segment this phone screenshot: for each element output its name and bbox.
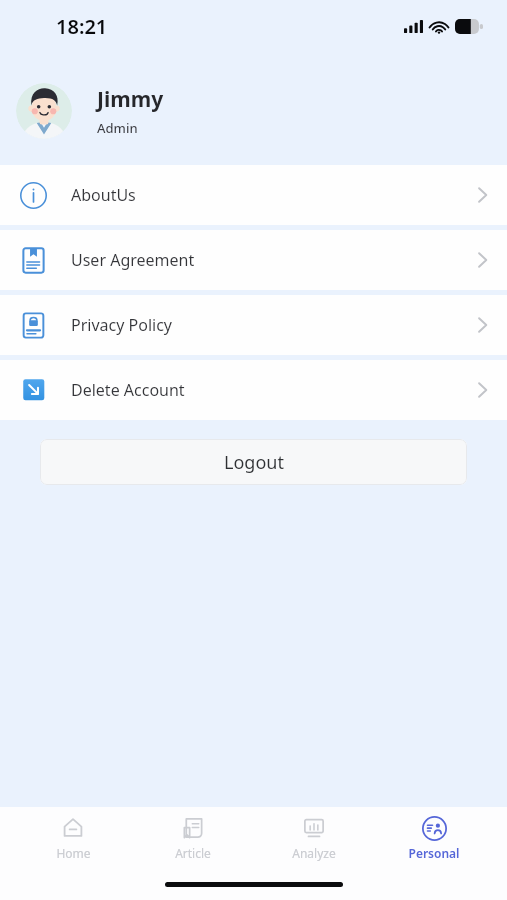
staticText: User Agreement [71,249,195,271]
button[interactable]: Privacy Policy [0,295,507,355]
other: Analyze [302,816,326,840]
button[interactable]: Article [146,811,240,865]
button[interactable]: Personal [387,811,481,865]
staticText: Article [175,845,211,861]
button[interactable]: AboutUs [0,165,507,225]
other: Personal [422,816,447,841]
other: Home [61,816,85,840]
button[interactable]: Home [26,811,120,865]
staticText: Logout [224,450,284,475]
button[interactable]: Jimmy [0,83,507,139]
staticText: Privacy Policy [71,314,172,336]
staticText: Personal [408,845,460,861]
other: Article [181,816,205,840]
button[interactable]: Logout [40,439,467,485]
staticText: Home [56,845,91,861]
staticText: 18:21 [56,13,108,40]
staticText: Jimmy [97,85,164,114]
staticText: AboutUs [71,184,136,206]
staticText: Analyze [292,845,336,861]
button[interactable]: Delete Account [0,360,507,420]
button[interactable]: Analyze [267,811,361,865]
button[interactable]: User Agreement [0,230,507,290]
staticText: Delete Account [71,379,185,401]
staticText: Admin [97,119,138,137]
